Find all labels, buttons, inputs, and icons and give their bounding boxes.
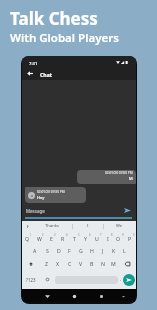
button[interactable]: P	[125, 231, 136, 244]
button[interactable]: Q	[22, 231, 34, 244]
staticText: 1	[30, 233, 32, 237]
staticText: W	[37, 235, 42, 242]
staticText: Talk Chess	[10, 7, 98, 30]
staticText: 8	[111, 233, 113, 237]
staticText: K	[112, 247, 116, 254]
button[interactable]: Emoji	[39, 270, 55, 289]
staticText: H	[90, 247, 94, 254]
button[interactable]: Home	[69, 291, 79, 301]
staticText: 7:31	[29, 61, 38, 67]
staticText: 9	[122, 233, 124, 237]
button[interactable]: Backspace	[119, 257, 136, 270]
staticText: Chat	[40, 71, 53, 78]
staticText: L	[123, 247, 126, 254]
staticText: B	[90, 260, 94, 267]
button[interactable]: A	[29, 244, 41, 257]
button[interactable]: Shift	[22, 257, 40, 270]
button[interactable]: Message	[26, 208, 123, 214]
button[interactable]: E	[46, 231, 58, 244]
button[interactable]: K	[108, 244, 119, 257]
staticText: 02:01/20 07:00 PM	[105, 171, 133, 175]
button[interactable]: B	[86, 257, 97, 270]
staticText: Q	[25, 235, 30, 242]
button[interactable]: Z	[40, 257, 52, 270]
staticText: I	[107, 235, 109, 242]
button[interactable]: L	[119, 244, 130, 257]
button[interactable]: M	[108, 257, 119, 270]
staticText: A	[33, 247, 37, 254]
button[interactable]: W	[34, 231, 46, 244]
staticText: 3	[54, 233, 56, 237]
button[interactable]: We	[104, 221, 134, 231]
staticText: 4	[66, 233, 68, 237]
button[interactable]: D	[53, 244, 64, 257]
staticText: 6	[89, 233, 91, 237]
button[interactable]: Thanks	[33, 221, 72, 231]
button[interactable]: Send message	[123, 274, 135, 286]
staticText: I	[87, 223, 89, 229]
button[interactable]: X	[52, 257, 64, 270]
staticText: 7	[100, 233, 102, 237]
staticText: .	[120, 276, 122, 283]
staticText: S	[46, 247, 49, 254]
button[interactable]: F	[64, 244, 75, 257]
staticText: O	[116, 235, 121, 242]
button[interactable]: V	[75, 257, 86, 270]
staticText: V	[79, 260, 83, 267]
staticText: T	[73, 235, 76, 242]
staticText: Hey	[37, 195, 45, 200]
button[interactable]: C	[64, 257, 75, 270]
button[interactable]: R	[58, 231, 70, 244]
button[interactable]: J	[97, 244, 108, 257]
button[interactable]: I	[103, 231, 114, 244]
button[interactable]: .	[118, 270, 123, 289]
staticText: D	[57, 247, 61, 254]
button[interactable]: Back	[42, 291, 52, 301]
button[interactable]: I	[73, 221, 103, 231]
staticText: We	[116, 223, 123, 229]
button[interactable]: G	[75, 244, 86, 257]
staticText: 0	[133, 233, 135, 237]
staticText: Z	[45, 260, 48, 267]
staticText: M	[111, 260, 116, 267]
button[interactable]: Send	[123, 206, 132, 215]
staticText: 2	[42, 233, 44, 237]
staticText: 02:01/20 07:35 PM	[37, 190, 65, 194]
button[interactable]: Hide keyboard	[118, 291, 128, 301]
staticText: N	[101, 260, 105, 267]
button[interactable]: N	[97, 257, 108, 270]
staticText: ?123	[26, 277, 36, 283]
staticText: M	[129, 176, 133, 181]
button[interactable]: S	[41, 244, 53, 257]
staticText: 5	[78, 233, 80, 237]
staticText: R	[61, 235, 65, 242]
staticText: Thanks	[45, 223, 60, 229]
button[interactable]: H	[86, 244, 97, 257]
button[interactable]: O	[114, 231, 125, 244]
button[interactable]: 02:01/20 07:00 PM	[77, 170, 136, 184]
staticText: F	[68, 247, 71, 254]
button[interactable]: U	[92, 231, 103, 244]
button[interactable]: More suggestions	[22, 221, 33, 231]
staticText: C	[68, 260, 72, 267]
staticText: With Global Players	[10, 30, 119, 46]
staticText: Y	[84, 235, 87, 242]
staticText: J	[102, 247, 104, 254]
staticText: P	[128, 235, 132, 242]
button[interactable]: Back	[23, 67, 36, 80]
button[interactable]: 02:01/20 07:35 PM	[25, 187, 86, 203]
staticText: X	[56, 260, 60, 267]
button[interactable]: ?123	[22, 270, 39, 289]
staticText: G	[79, 247, 83, 254]
button[interactable]: T	[70, 231, 81, 244]
staticText: E	[50, 235, 53, 242]
button[interactable]: Y	[81, 231, 92, 244]
staticText: U	[95, 235, 99, 242]
button[interactable]: Recents	[96, 291, 106, 301]
